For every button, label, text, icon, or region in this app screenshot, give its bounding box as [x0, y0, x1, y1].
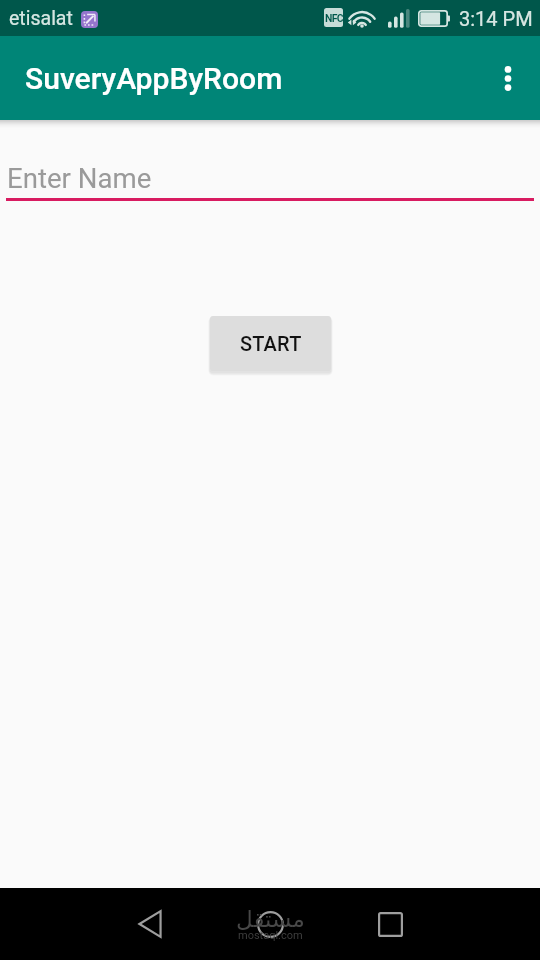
button[interactable]: Back [126, 900, 174, 948]
button[interactable]: Recent apps [366, 900, 414, 948]
button[interactable]: START [210, 316, 331, 371]
button[interactable]: Enter Name [0, 120, 540, 210]
staticText: etisalat [9, 7, 73, 30]
staticText: مستقل [236, 906, 305, 933]
staticText: START [240, 332, 302, 355]
staticText: NFC [325, 12, 343, 24]
staticText: SuveryAppByRoom [25, 61, 283, 96]
staticText: mostaql.com [238, 929, 303, 942]
staticText: Enter Name [7, 162, 152, 194]
staticText: 3:14 PM [459, 7, 533, 30]
button[interactable]: More options [484, 36, 532, 120]
button[interactable]: Home [246, 900, 294, 948]
